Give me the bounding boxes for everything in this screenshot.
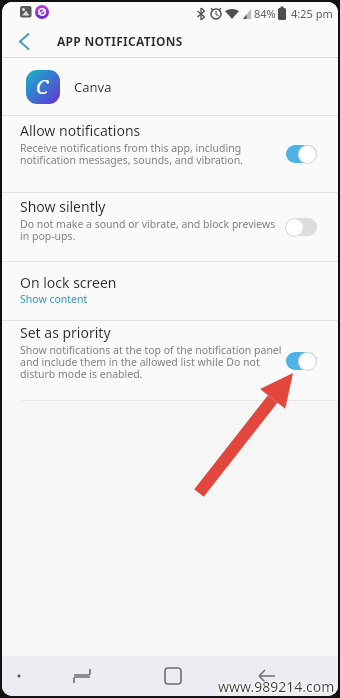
- staticText: 4:25 pm: [291, 6, 333, 21]
- staticText: www.989214.com: [218, 678, 335, 696]
- staticText: Set as priority: [20, 323, 111, 342]
- staticText: 84%: [254, 6, 276, 21]
- button[interactable]: [285, 217, 317, 237]
- button[interactable]: [114, 656, 226, 696]
- staticText: On lock screen: [20, 273, 117, 292]
- staticText: Show content: [20, 292, 88, 306]
- button[interactable]: [2, 25, 42, 57]
- staticText: www.989214.com: [217, 677, 334, 696]
- button[interactable]: Allow notifications: [2, 116, 338, 192]
- button[interactable]: [226, 656, 338, 696]
- button[interactable]: Show silently: [2, 193, 338, 261]
- staticText: Allow notifications: [20, 121, 141, 140]
- staticText: www.989214.com: [219, 677, 336, 696]
- staticText: Show notifications at the top of the not…: [20, 343, 282, 381]
- button[interactable]: On lock screen: [2, 262, 338, 320]
- button[interactable]: [285, 351, 317, 371]
- staticText: C: [36, 73, 49, 100]
- staticText: Do not make a sound or vibrate, and bloc…: [20, 217, 276, 243]
- staticText: APP NOTIFICATIONS: [57, 33, 183, 49]
- staticText: Show silently: [20, 197, 106, 216]
- button[interactable]: [2, 656, 114, 696]
- staticText: www.989214.com: [218, 676, 335, 695]
- staticText: www.989214.com: [218, 677, 335, 696]
- button[interactable]: Set as priority: [2, 321, 338, 400]
- staticText: Receive notifications from this app, inc…: [20, 141, 243, 167]
- button[interactable]: C: [2, 58, 338, 115]
- button[interactable]: [285, 144, 317, 164]
- staticText: Canva: [74, 78, 112, 96]
